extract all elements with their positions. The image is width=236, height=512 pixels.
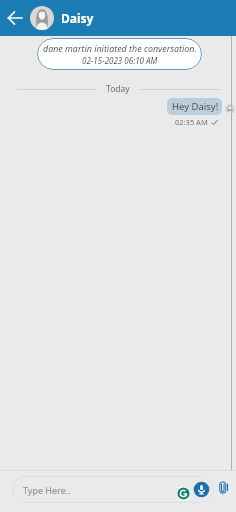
button[interactable]: Attach file — [217, 481, 231, 495]
staticText: dane martin initiated the conversation. — [43, 42, 197, 54]
staticText: 02:35 AM — [175, 117, 208, 127]
staticText: Today — [106, 83, 130, 95]
button[interactable]: Type Here.. — [12, 476, 214, 503]
staticText: Type Here.. — [23, 484, 71, 496]
staticText: 02-15-2023 06:10 AM — [82, 55, 158, 66]
staticText: Daisy — [61, 10, 94, 26]
button[interactable]: Back — [5, 8, 25, 28]
button[interactable]: Voice message — [193, 481, 210, 498]
staticText: Hey Daisy! — [172, 100, 219, 113]
button[interactable]: Grammarly — [176, 486, 191, 501]
button[interactable]: Hey Daisy! — [167, 98, 222, 115]
